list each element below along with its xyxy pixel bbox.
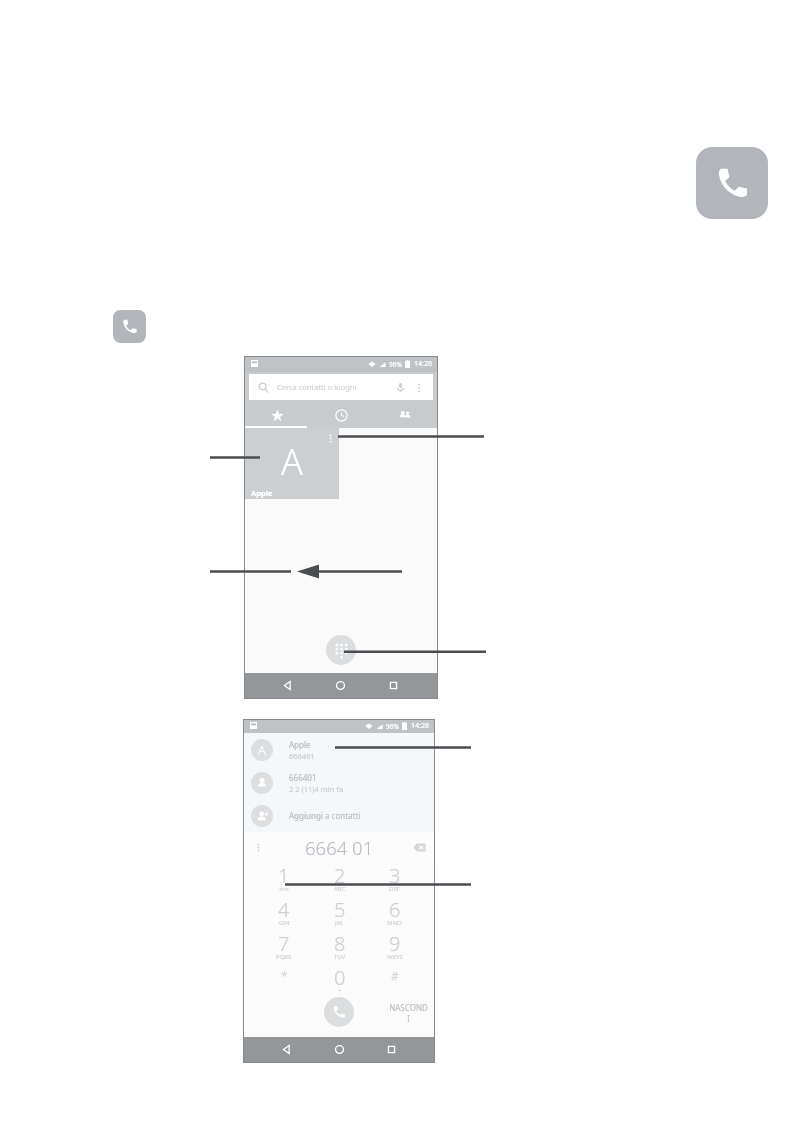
staticText: * [281, 968, 288, 984]
button[interactable]: Back [260, 1037, 313, 1062]
staticText: WXYZ [387, 953, 403, 961]
button[interactable]: Dialpad [326, 635, 356, 665]
button[interactable]: Recent apps [365, 1037, 417, 1062]
button[interactable]: Call [324, 997, 354, 1027]
staticText: # [391, 968, 399, 984]
button[interactable]: Options [253, 842, 263, 852]
staticText: A [281, 437, 303, 486]
button[interactable]: Favourites [245, 402, 309, 428]
button[interactable]: 8 [312, 930, 367, 964]
button[interactable]: Home [313, 1037, 365, 1062]
staticText: ABC [334, 885, 346, 893]
button[interactable]: Contacts [373, 402, 437, 428]
button[interactable]: 2 [312, 862, 367, 896]
button[interactable]: 5 [312, 896, 367, 930]
staticText: 14:26 [414, 359, 432, 369]
staticText: 0 [334, 964, 346, 991]
staticText: A [258, 741, 266, 759]
button[interactable]: A [244, 733, 434, 766]
staticText: 8 [334, 930, 346, 957]
staticText: 5 [334, 896, 346, 923]
staticText: 2 2 (11)4 min fa [289, 784, 344, 794]
staticText: GHI [279, 919, 290, 927]
staticText: TUV [334, 953, 346, 961]
button[interactable]: 1 [256, 862, 312, 896]
button[interactable]: Phone app small icon [113, 310, 146, 343]
staticText: 96% [386, 722, 399, 731]
button[interactable]: 3 [367, 862, 422, 896]
staticText: Apple [289, 739, 311, 750]
button[interactable]: Recent apps [367, 673, 420, 698]
staticText: 6 [389, 896, 401, 923]
staticText: DEF [389, 885, 400, 893]
button[interactable]: A [245, 428, 339, 499]
button[interactable]: 666401 [244, 766, 434, 799]
staticText: PQRS [276, 953, 292, 961]
staticText: ∞∞ [279, 885, 289, 892]
staticText: Apple [251, 488, 273, 498]
staticText: 9 [389, 930, 401, 957]
staticText: JKL [335, 919, 344, 927]
staticText: Cerca contatti o luoghi [277, 382, 357, 392]
staticText: 14:26 [411, 721, 429, 731]
button[interactable]: Recents [309, 402, 373, 428]
staticText: MNO [387, 919, 402, 927]
staticText: 1 [278, 862, 290, 889]
staticText: 666401 [289, 751, 315, 761]
button[interactable]: Back [261, 673, 314, 698]
button[interactable]: Cerca contatti o luoghi [249, 374, 433, 400]
staticText: 3 [389, 862, 401, 889]
button[interactable]: 7 [256, 930, 312, 964]
button[interactable]: 9 [367, 930, 422, 964]
button[interactable]: 6 [367, 896, 422, 930]
staticText: NASCONDI [388, 1002, 429, 1024]
staticText: Aggiungi a contatti [289, 810, 361, 821]
button[interactable]: Aggiungi a contatti [244, 799, 434, 832]
button[interactable]: Delete [412, 840, 427, 855]
staticText: 6664 01 [305, 835, 374, 860]
button[interactable]: # [367, 964, 422, 998]
staticText: + [338, 987, 342, 995]
staticText: 2 [334, 862, 346, 889]
staticText: 4 [278, 896, 290, 923]
staticText: 96% [389, 360, 402, 369]
button[interactable]: 4 [256, 896, 312, 930]
button[interactable]: 0 [312, 964, 367, 998]
button[interactable]: Home [314, 673, 367, 698]
staticText: 666401 [289, 772, 317, 783]
staticText: 7 [278, 930, 290, 957]
button[interactable]: More options [325, 433, 335, 443]
button[interactable]: Phone app icon [696, 147, 768, 219]
